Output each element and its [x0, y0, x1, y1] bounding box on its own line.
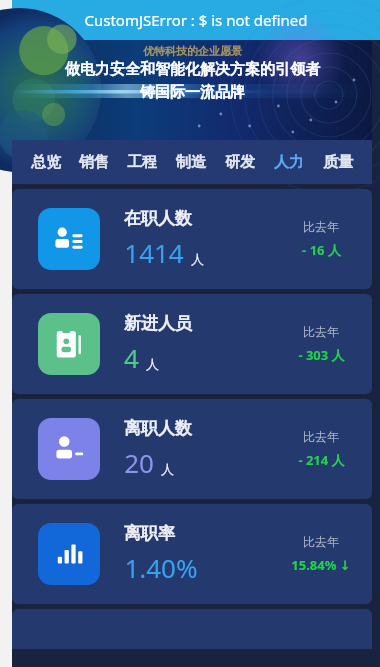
staticText: 20 [124, 445, 154, 480]
staticText: - 303 人 [298, 346, 345, 364]
staticText: 制造 [176, 153, 206, 172]
staticText: 研发 [225, 153, 255, 172]
staticText: 比去年 [303, 429, 339, 444]
staticText: 总览 [31, 153, 61, 172]
staticText: 销售 [79, 153, 109, 172]
staticText: 铸国际一流品牌 [140, 83, 245, 102]
staticText: 4 [124, 340, 139, 375]
other: 离职率 [38, 523, 100, 585]
other: 新进人员 [38, 313, 100, 375]
staticText: CustomJSError : $ is not defined [84, 10, 308, 30]
staticText: 在职人数 [124, 208, 192, 229]
staticText: 1414 [124, 235, 184, 270]
button[interactable]: 离职率 [12, 504, 372, 604]
staticText: 离职率 [124, 523, 175, 544]
staticText: 人 [161, 461, 174, 477]
staticText: 人 [191, 251, 204, 267]
staticText: - 214 人 [298, 451, 345, 469]
staticText: 人力 [274, 153, 304, 172]
button[interactable]: 人力 [264, 140, 313, 184]
staticText: 工程 [127, 153, 157, 172]
button[interactable]: 制造 [166, 140, 215, 184]
staticText: 比去年 [303, 534, 339, 549]
staticText: 1.40% [124, 550, 198, 585]
staticText: 比去年 [303, 219, 339, 234]
button[interactable]: 离职人数 [12, 399, 372, 499]
staticText: 离职人数 [124, 418, 192, 439]
staticText: 新进人员 [124, 313, 192, 334]
staticText: 15.84% ↓ [291, 556, 351, 574]
button[interactable]: 总览 [22, 140, 70, 184]
button[interactable]: 在职人数 [12, 189, 372, 289]
button[interactable]: 工程 [118, 140, 166, 184]
staticText: 质量 [323, 153, 353, 172]
staticText: 人 [146, 356, 159, 372]
other: 在职人数 [38, 208, 100, 270]
staticText: - 16 人 [302, 241, 341, 259]
button[interactable]: 新进人员 [12, 294, 372, 394]
staticText: 优特科技的企业愿景 [143, 44, 242, 58]
button[interactable]: 质量 [313, 140, 362, 184]
staticText: 比去年 [303, 324, 339, 339]
button[interactable]: 销售 [70, 140, 118, 184]
other: 离职人数 [38, 418, 100, 480]
button[interactable]: 研发 [215, 140, 264, 184]
staticText: 做电力安全和智能化解决方案的引领者 [65, 60, 320, 79]
